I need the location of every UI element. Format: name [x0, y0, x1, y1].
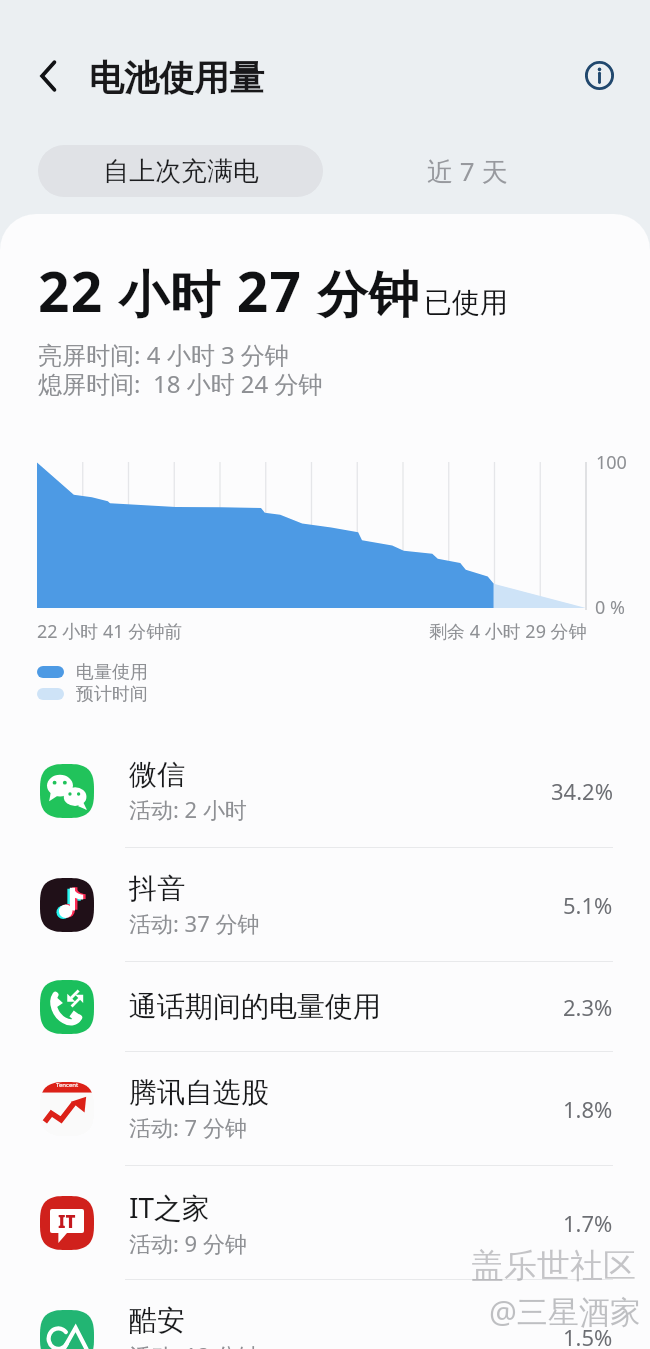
staticText: IT之家 [129, 1188, 211, 1226]
staticText: 1.7% [563, 1208, 613, 1238]
staticText: 熄屏时间: 18 小时 24 分钟 [38, 367, 323, 400]
staticText: 1.5% [563, 1322, 613, 1349]
staticText: 活动: 2 小时 [129, 794, 247, 824]
staticText: 电池使用量 [89, 56, 264, 100]
staticText: 100 [596, 450, 627, 475]
staticText: 近 7 天 [427, 153, 508, 189]
staticText: IT [58, 1210, 76, 1233]
staticText: 抖音 [129, 871, 185, 906]
staticText: 22 小时 41 分钟前 [37, 619, 183, 644]
staticText: 预计时间 [76, 683, 148, 705]
button[interactable]: 微信 [0, 734, 650, 847]
staticText: 2.3% [563, 992, 613, 1022]
staticText: 活动: 37 分钟 [129, 908, 260, 938]
staticText: 5.1% [563, 890, 613, 920]
staticText: 22 小时 27 分钟 [38, 253, 420, 328]
staticText: 0 % [595, 595, 625, 620]
staticText: @三星酒家 [489, 1290, 641, 1332]
staticText: 腾讯自选股 [129, 1075, 269, 1110]
staticText: 剩余 4 小时 29 分钟 [429, 619, 587, 644]
button[interactable]: 抖音 [0, 848, 650, 961]
button[interactable]: IT [0, 1166, 650, 1279]
staticText: 已使用 [424, 285, 508, 320]
button[interactable]: 通话期间的电量使用 [0, 962, 650, 1051]
button[interactable]: Information [577, 53, 621, 97]
staticText: 1.8% [563, 1094, 613, 1124]
staticText: 通话期间的电量使用 [129, 989, 381, 1024]
staticText: Tencent [56, 1082, 79, 1089]
button[interactable]: 近 7 天 [410, 145, 525, 197]
button[interactable]: 自上次充满电 [38, 145, 323, 197]
staticText: 盖乐世社区 [471, 1245, 636, 1287]
button[interactable]: Back [27, 54, 71, 98]
staticText: 亮屏时间: 4 小时 3 分钟 [38, 338, 289, 371]
staticText: 自上次充满电 [103, 155, 259, 188]
staticText: 活动: 7 分钟 [129, 1112, 247, 1142]
staticText: 电量使用 [76, 661, 148, 683]
staticText: 酷安 [129, 1303, 185, 1338]
button[interactable]: Tencent [0, 1052, 650, 1165]
staticText: 34.2% [551, 776, 613, 806]
staticText: 活动: 12 分钟 [129, 1340, 260, 1349]
staticText: 微信 [129, 757, 185, 792]
staticText: 活动: 9 分钟 [129, 1228, 247, 1258]
button[interactable]: 酷安 [0, 1280, 650, 1349]
